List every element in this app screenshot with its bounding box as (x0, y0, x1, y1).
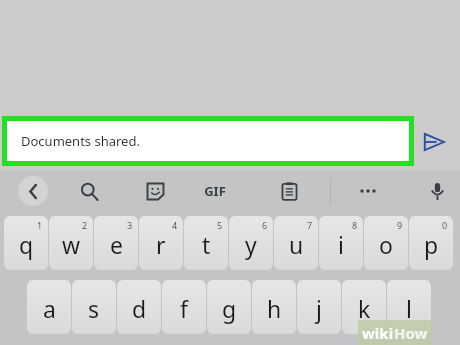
button[interactable]: Search (74, 176, 104, 206)
button[interactable]: r (139, 216, 183, 270)
staticText: o (379, 229, 393, 260)
button[interactable]: Back (18, 176, 48, 206)
staticText: 9 (397, 219, 403, 231)
staticText: 3 (127, 219, 133, 231)
staticText: 2 (82, 219, 88, 231)
button[interactable]: j (297, 280, 341, 334)
button[interactable]: t (184, 216, 228, 270)
staticText: a (43, 293, 56, 324)
staticText: wiki (362, 323, 394, 343)
button[interactable]: GIF (200, 176, 230, 206)
staticText: GIF (204, 182, 226, 200)
staticText: 1 (37, 219, 43, 231)
staticText: 8 (352, 219, 358, 231)
staticText: d (132, 293, 147, 324)
button[interactable]: o (364, 216, 408, 270)
staticText: u (289, 229, 304, 260)
staticText: t (202, 229, 211, 260)
button[interactable]: k (342, 280, 386, 334)
staticText: w (62, 229, 81, 260)
staticText: h (267, 293, 282, 324)
button[interactable]: e (94, 216, 138, 270)
button[interactable]: Voice input (422, 176, 452, 206)
button[interactable]: p (409, 216, 453, 270)
button[interactable]: i (319, 216, 363, 270)
staticText: y (245, 229, 257, 260)
staticText: k (358, 293, 371, 324)
staticText: 6 (262, 219, 268, 231)
button[interactable]: g (207, 280, 251, 334)
staticText: s (88, 293, 100, 324)
button[interactable]: w (49, 216, 93, 270)
button[interactable]: q (4, 216, 48, 270)
button[interactable]: f (162, 280, 206, 334)
button[interactable]: Clipboard (274, 176, 304, 206)
button[interactable]: Stickers (140, 176, 170, 206)
staticText: 0 (442, 219, 448, 231)
staticText: 5 (217, 219, 223, 231)
staticText: 7 (307, 219, 313, 231)
button[interactable]: l (387, 280, 431, 334)
staticText: Documents shared. (21, 132, 140, 150)
button[interactable]: y (229, 216, 273, 270)
staticText: j (316, 293, 322, 324)
staticText: g (222, 293, 237, 324)
staticText: 4 (172, 219, 178, 231)
button[interactable]: d (117, 280, 161, 334)
button[interactable]: u (274, 216, 318, 270)
button[interactable]: Send (414, 122, 454, 162)
staticText: r (156, 229, 166, 260)
button[interactable]: More options (353, 176, 383, 206)
staticText: p (424, 229, 439, 260)
button[interactable]: s (72, 280, 116, 334)
button[interactable]: a (27, 280, 71, 334)
button[interactable]: h (252, 280, 296, 334)
staticText: q (19, 229, 34, 260)
staticText: e (110, 229, 123, 260)
button[interactable]: Documents shared. (7, 121, 409, 161)
staticText: l (406, 293, 412, 324)
staticText: i (338, 229, 344, 260)
staticText: f (180, 293, 188, 324)
staticText: How (394, 323, 428, 343)
